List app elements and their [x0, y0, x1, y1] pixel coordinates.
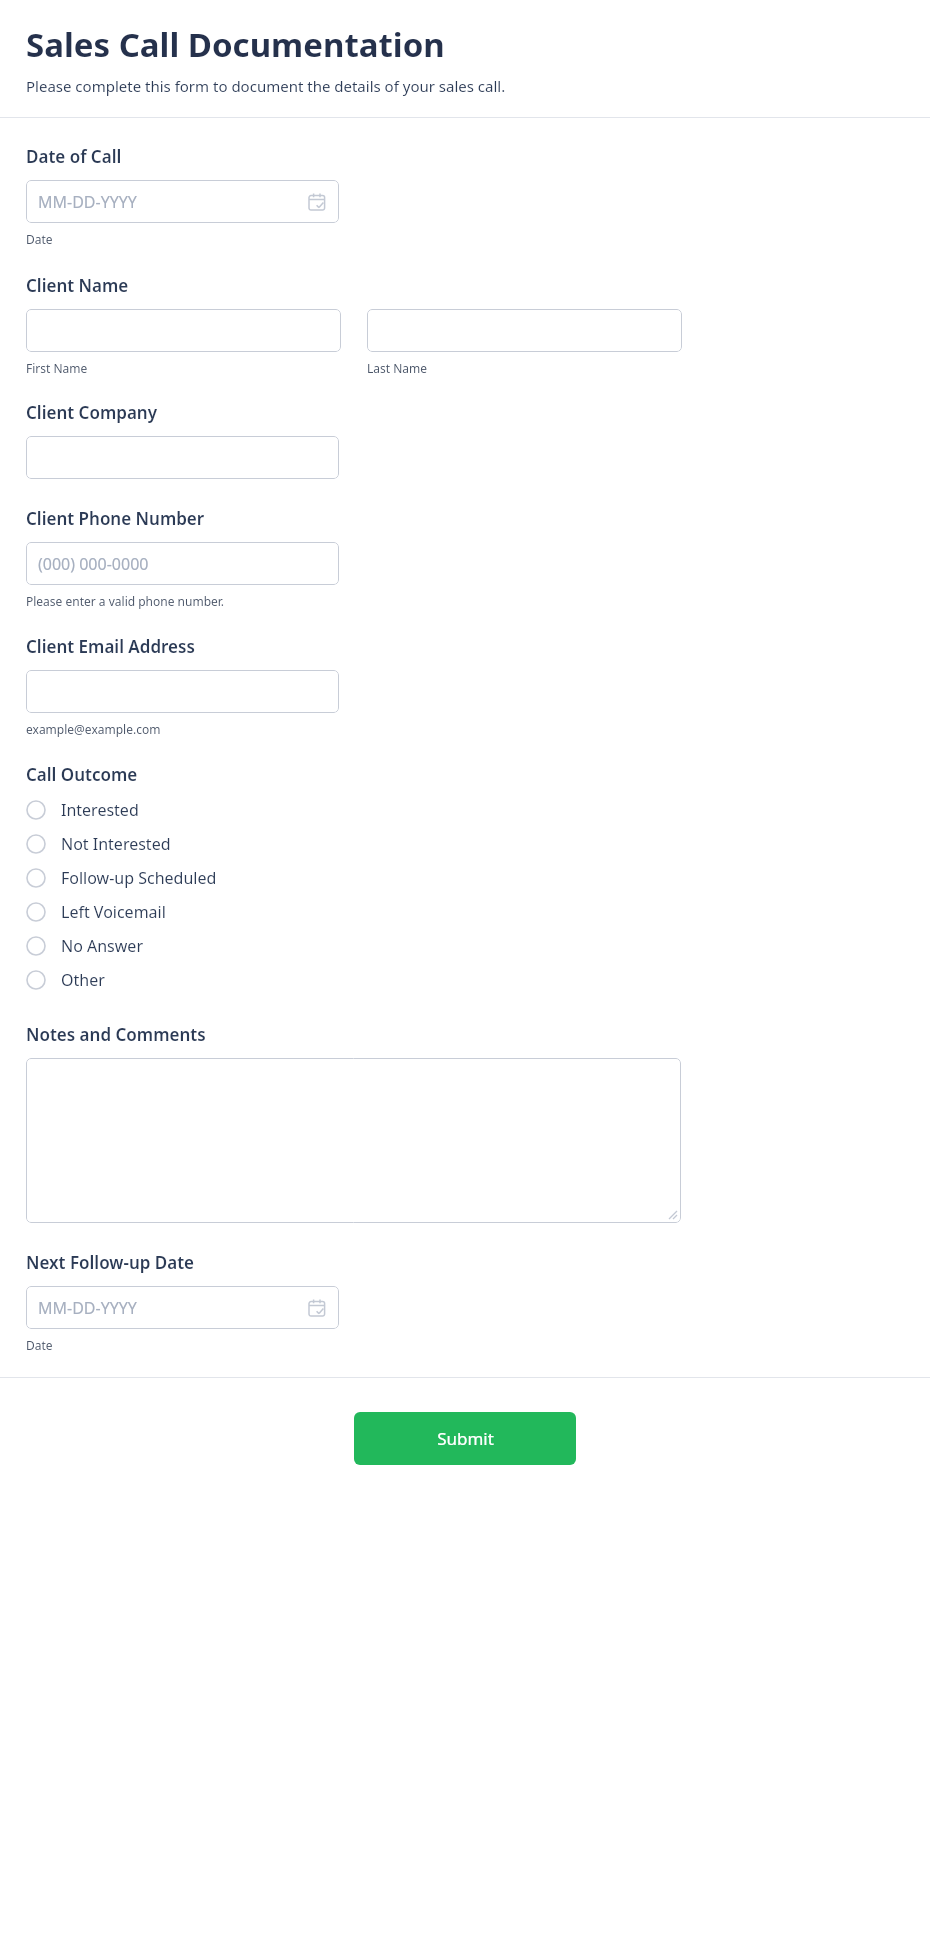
- button[interactable]: (000) 000-0000: [26, 542, 339, 585]
- button[interactable]: [26, 1058, 681, 1223]
- button[interactable]: [367, 309, 682, 352]
- staticText: example@example.com: [26, 721, 161, 737]
- button[interactable]: Other: [26, 963, 904, 997]
- button[interactable]: No Answer: [26, 929, 904, 963]
- staticText: Client Email Address: [26, 635, 195, 658]
- staticText: Sales Call Documentation: [26, 22, 445, 67]
- staticText: Next Follow-up Date: [26, 1251, 195, 1274]
- staticText: MM-DD-YYYY: [38, 191, 137, 213]
- staticText: Client Company: [26, 401, 157, 424]
- other: Open calendar: [307, 1298, 327, 1318]
- staticText: Interested: [61, 799, 139, 821]
- button[interactable]: Not Interested: [26, 827, 904, 861]
- button[interactable]: MM-DD-YYYY: [26, 1286, 339, 1329]
- staticText: Notes and Comments: [26, 1023, 206, 1046]
- staticText: Date: [26, 1337, 53, 1353]
- staticText: Not Interested: [61, 833, 171, 855]
- button[interactable]: [26, 670, 339, 713]
- button[interactable]: MM-DD-YYYY: [26, 180, 339, 223]
- staticText: Other: [61, 969, 105, 991]
- staticText: Follow-up Scheduled: [61, 867, 217, 889]
- staticText: MM-DD-YYYY: [38, 1297, 137, 1319]
- staticText: Last Name: [367, 360, 428, 376]
- button[interactable]: Left Voicemail: [26, 895, 904, 929]
- staticText: Submit: [437, 1427, 494, 1450]
- staticText: Please complete this form to document th…: [26, 76, 506, 96]
- staticText: Date of Call: [26, 145, 122, 168]
- staticText: Client Name: [26, 274, 129, 297]
- staticText: Call Outcome: [26, 763, 138, 786]
- staticText: (000) 000-0000: [38, 553, 149, 575]
- staticText: No Answer: [61, 935, 143, 957]
- button[interactable]: Follow-up Scheduled: [26, 861, 904, 895]
- button[interactable]: Interested: [26, 793, 904, 827]
- staticText: Client Phone Number: [26, 507, 205, 530]
- staticText: Left Voicemail: [61, 901, 166, 923]
- button[interactable]: [26, 309, 341, 352]
- other: Open calendar: [307, 192, 327, 212]
- button[interactable]: Submit: [354, 1412, 576, 1465]
- staticText: Please enter a valid phone number.: [26, 593, 225, 609]
- staticText: First Name: [26, 360, 88, 376]
- button[interactable]: [26, 436, 339, 479]
- staticText: Date: [26, 231, 53, 247]
